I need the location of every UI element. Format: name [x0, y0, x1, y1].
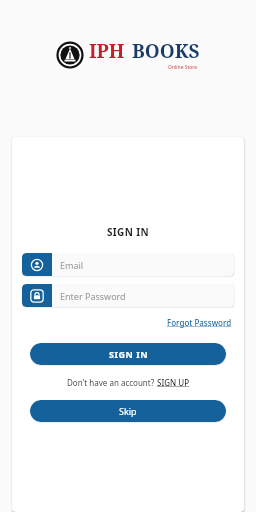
button[interactable]: Email — [22, 253, 234, 276]
staticText: SIGN UP — [157, 377, 190, 388]
button[interactable]: Enter Password — [22, 284, 234, 307]
staticText: Online Store — [168, 64, 198, 71]
button[interactable]: Skip — [30, 400, 226, 422]
staticText: Forgot Password — [167, 317, 232, 328]
staticText: SIGN IN — [109, 348, 148, 360]
button[interactable]: SIGN UP — [157, 377, 190, 388]
staticText: Enter Password — [60, 290, 126, 302]
staticText: IPH — [89, 38, 125, 64]
staticText: Email — [60, 259, 84, 271]
button[interactable]: SIGN IN — [30, 343, 226, 365]
staticText: SIGN IN — [22, 225, 234, 239]
staticText: BOOKS — [132, 38, 200, 64]
button[interactable]: Forgot Password — [165, 316, 234, 329]
staticText: Don't have an account? — [67, 377, 157, 388]
staticText: Skip — [119, 405, 137, 417]
